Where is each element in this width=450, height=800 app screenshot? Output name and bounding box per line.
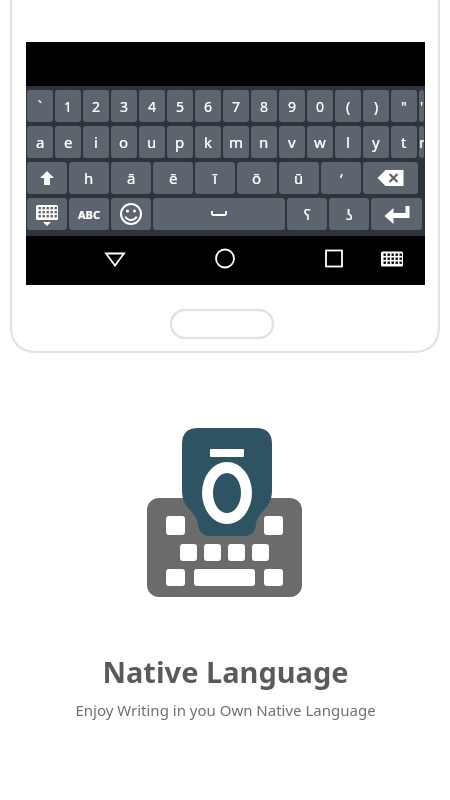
button[interactable]: ū: [279, 162, 319, 194]
button[interactable]: [27, 162, 67, 194]
button[interactable]: v: [279, 126, 305, 158]
button[interactable]: h: [69, 162, 109, 194]
button[interactable]: [363, 162, 418, 194]
staticText: 2: [92, 97, 101, 116]
staticText: Native Language: [102, 652, 349, 691]
staticText: ): [374, 97, 379, 116]
staticText: l: [346, 132, 350, 152]
staticText: 8: [260, 97, 269, 116]
staticText: ABC: [78, 207, 100, 222]
button[interactable]: 9: [279, 90, 305, 122]
button[interactable]: ": [391, 90, 417, 122]
staticText: e: [64, 132, 73, 152]
staticText: `: [38, 97, 42, 116]
staticText: 7: [232, 97, 241, 116]
button[interactable]: ): [363, 90, 389, 122]
button[interactable]: ABC: [69, 198, 109, 230]
button[interactable]: 8: [251, 90, 277, 122]
button[interactable]: ʖ: [329, 198, 369, 230]
button[interactable]: m: [223, 126, 249, 158]
staticText: i: [94, 132, 98, 152]
button[interactable]: ': [419, 90, 424, 122]
button[interactable]: ‘: [321, 162, 361, 194]
staticText: ': [420, 97, 424, 116]
button[interactable]: ʕ: [287, 198, 327, 230]
button[interactable]: k: [195, 126, 221, 158]
button[interactable]: 4: [139, 90, 165, 122]
staticText: m: [229, 132, 244, 152]
staticText: 6: [204, 97, 213, 116]
staticText: ō: [252, 168, 262, 188]
staticText: n: [259, 132, 269, 152]
button[interactable]: l: [335, 126, 361, 158]
staticText: w: [314, 132, 326, 152]
button[interactable]: (: [335, 90, 361, 122]
button[interactable]: n: [251, 126, 277, 158]
button[interactable]: 7: [223, 90, 249, 122]
staticText: a: [36, 132, 45, 152]
button[interactable]: ā: [111, 162, 151, 194]
button[interactable]: a: [27, 126, 53, 158]
staticText: ē: [169, 168, 178, 188]
staticText: 1: [64, 97, 73, 116]
staticText: o: [119, 132, 129, 152]
staticText: 4: [148, 97, 157, 116]
staticText: ʕ: [304, 204, 311, 224]
button[interactable]: r: [419, 126, 424, 158]
button[interactable]: ē: [153, 162, 193, 194]
staticText: ": [401, 97, 407, 116]
button[interactable]: 1: [55, 90, 81, 122]
staticText: ā: [127, 168, 136, 188]
button[interactable]: t: [391, 126, 417, 158]
button[interactable]: [153, 198, 285, 230]
staticText: y: [372, 132, 380, 152]
staticText: ‘: [340, 168, 343, 188]
button[interactable]: 0: [307, 90, 333, 122]
staticText: Enjoy Writing in you Own Native Language: [75, 700, 376, 720]
button[interactable]: p: [167, 126, 193, 158]
staticText: 5: [176, 97, 185, 116]
button[interactable]: i: [83, 126, 109, 158]
button[interactable]: ō: [237, 162, 277, 194]
staticText: p: [175, 132, 185, 152]
staticText: t: [401, 132, 407, 152]
staticText: ī: [213, 168, 217, 188]
button[interactable]: 3: [111, 90, 137, 122]
staticText: 0: [316, 97, 325, 116]
staticText: ʖ: [346, 204, 353, 224]
staticText: v: [288, 132, 296, 152]
staticText: 9: [288, 97, 297, 116]
staticText: r: [419, 132, 424, 152]
staticText: ū: [294, 168, 304, 188]
staticText: (: [346, 97, 351, 116]
button[interactable]: [111, 198, 151, 230]
staticText: h: [84, 168, 94, 188]
staticText: 3: [120, 97, 129, 116]
button[interactable]: 5: [167, 90, 193, 122]
button[interactable]: 2: [83, 90, 109, 122]
button[interactable]: `: [27, 90, 53, 122]
button[interactable]: e: [55, 126, 81, 158]
button[interactable]: y: [363, 126, 389, 158]
button[interactable]: o: [111, 126, 137, 158]
button[interactable]: u: [139, 126, 165, 158]
staticText: k: [204, 132, 213, 152]
button[interactable]: [27, 198, 67, 230]
button[interactable]: [371, 198, 422, 230]
staticText: u: [147, 132, 157, 152]
button[interactable]: ī: [195, 162, 235, 194]
button[interactable]: w: [307, 126, 333, 158]
button[interactable]: 6: [195, 90, 221, 122]
